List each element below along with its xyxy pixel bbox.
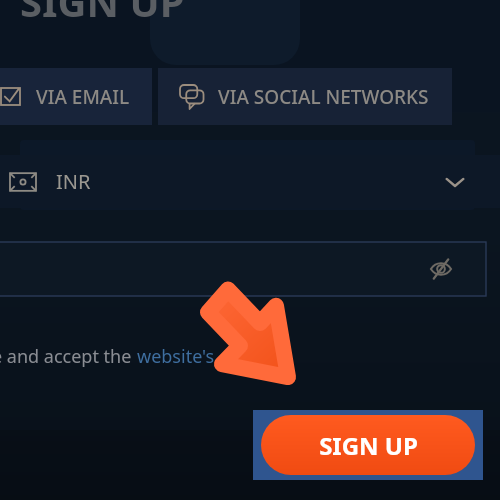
button[interactable]: VIA EMAIL <box>0 68 152 125</box>
staticText: INR <box>56 168 91 195</box>
staticText: VIA EMAIL <box>36 84 130 110</box>
staticText: SIGN UP <box>20 0 185 28</box>
button[interactable]: Show password <box>0 242 486 296</box>
button[interactable]: SIGN UP <box>253 410 483 480</box>
button[interactable]: website's <box>137 344 215 369</box>
staticText: website's <box>137 344 215 369</box>
staticText: e and accept the <box>0 344 137 369</box>
staticText: VIA SOCIAL NETWORKS <box>218 84 429 110</box>
button[interactable]: VIA SOCIAL NETWORKS <box>158 68 452 125</box>
staticText: SIGN UP <box>319 429 418 462</box>
button[interactable]: Show password <box>426 254 456 284</box>
button[interactable]: INR <box>0 155 500 208</box>
